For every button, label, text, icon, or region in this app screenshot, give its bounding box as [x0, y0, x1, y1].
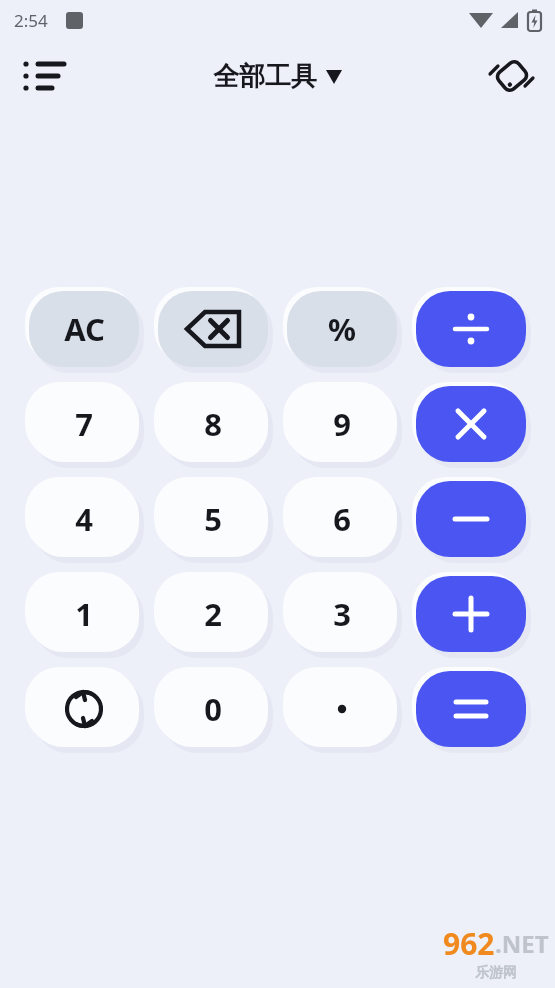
staticText: 9 — [333, 403, 351, 445]
button[interactable]: Convert — [29, 671, 139, 747]
button[interactable]: 8 — [158, 386, 268, 462]
button[interactable]: 3 — [287, 576, 397, 652]
button[interactable]: 4 — [29, 481, 139, 557]
button[interactable]: 1 — [29, 576, 139, 652]
button[interactable]: Divide — [416, 291, 526, 367]
staticText: 全部工具 — [213, 60, 317, 93]
button[interactable]: 0 — [158, 671, 268, 747]
staticText: 4 — [75, 498, 93, 540]
staticText: 1 — [75, 593, 93, 635]
button[interactable]: AC — [29, 291, 139, 367]
button[interactable]: Backspace — [158, 291, 268, 367]
button[interactable]: % — [287, 291, 397, 367]
button[interactable]: Menu — [14, 47, 72, 105]
staticText: 乐游网 — [475, 964, 517, 982]
button[interactable]: Minus — [416, 481, 526, 557]
button[interactable]: 6 — [287, 481, 397, 557]
staticText: 2 — [204, 593, 222, 635]
button[interactable]: Decimal point — [287, 671, 397, 747]
button[interactable]: 2 — [158, 576, 268, 652]
button[interactable]: Plus — [416, 576, 526, 652]
staticText: 8 — [204, 403, 222, 445]
button[interactable]: Theme — [483, 47, 541, 105]
button[interactable]: 9 — [287, 386, 397, 462]
button[interactable]: Multiply — [416, 386, 526, 462]
staticText: 6 — [333, 498, 351, 540]
staticText: 962 — [443, 923, 495, 964]
staticText: 5 — [204, 498, 222, 540]
button[interactable]: 7 — [29, 386, 139, 462]
staticText: 7 — [75, 403, 93, 445]
staticText: AC — [64, 308, 105, 350]
staticText: .NET — [495, 927, 549, 960]
staticText: 3 — [333, 593, 351, 635]
button[interactable]: Equals — [416, 671, 526, 747]
staticText: % — [328, 308, 356, 350]
staticText: 0 — [204, 688, 222, 730]
button[interactable]: 全部工具 — [213, 60, 342, 93]
button[interactable]: 5 — [158, 481, 268, 557]
staticText: 2:54 — [14, 9, 48, 32]
